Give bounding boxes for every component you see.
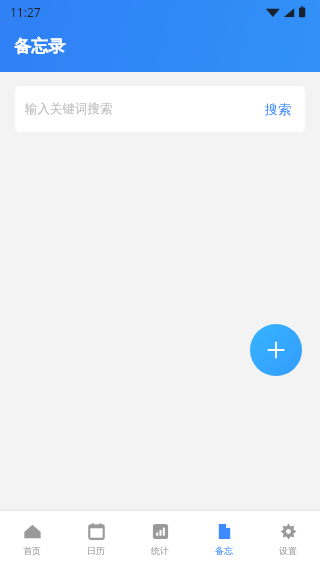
button[interactable]: 首页 bbox=[0, 510, 64, 568]
button[interactable]: 备忘 bbox=[192, 510, 256, 568]
button[interactable]: 新建备忘 bbox=[250, 324, 302, 376]
button[interactable]: 搜索 bbox=[261, 97, 295, 121]
staticText: 搜索 bbox=[265, 101, 291, 117]
staticText: 备忘 bbox=[215, 545, 233, 556]
staticText: 设置 bbox=[279, 545, 297, 556]
button[interactable]: 设置 bbox=[256, 510, 320, 568]
button[interactable]: 统计 bbox=[128, 510, 192, 568]
staticText: 11:27 bbox=[10, 4, 41, 20]
staticText: 首页 bbox=[23, 545, 41, 556]
staticText: 输入关键词搜索 bbox=[25, 101, 113, 117]
button[interactable]: 日历 bbox=[64, 510, 128, 568]
button[interactable]: 输入关键词搜索 bbox=[15, 86, 305, 132]
staticText: 日历 bbox=[87, 545, 105, 556]
staticText: 统计 bbox=[151, 545, 169, 556]
staticText: 备忘录 bbox=[14, 36, 65, 57]
